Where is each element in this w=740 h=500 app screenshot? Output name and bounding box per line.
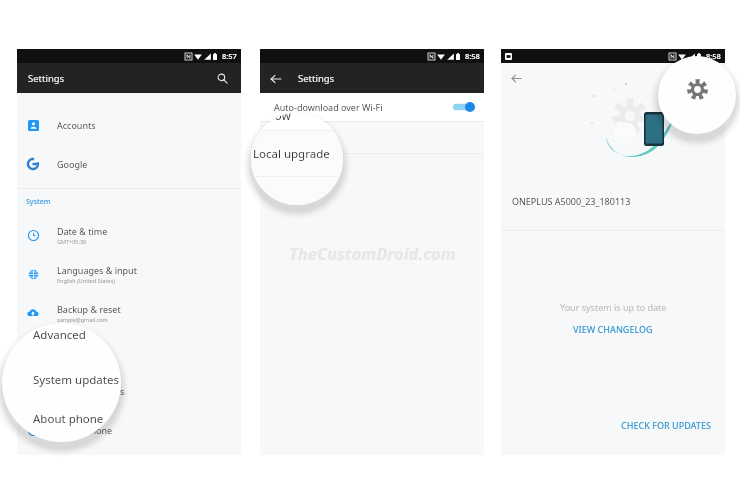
button[interactable]: Date & time	[17, 215, 241, 254]
staticText: System updates	[33, 372, 121, 388]
staticText: Local upgrade	[253, 146, 343, 162]
button[interactable]	[453, 101, 475, 113]
button[interactable]: System updates	[17, 371, 241, 410]
staticText: 8:58	[706, 51, 721, 61]
button[interactable]: Back	[508, 70, 524, 86]
staticText: GMT+05:30	[57, 238, 87, 245]
staticText: o-dow	[256, 113, 326, 123]
staticText: Settings	[28, 72, 65, 85]
staticText: Auto-download over Wi-Fi	[274, 101, 383, 113]
button[interactable]: Advanced	[17, 332, 241, 371]
staticText: About phone	[57, 424, 113, 436]
button[interactable]: About phone	[17, 410, 241, 449]
button[interactable]: CHECK FOR UPDATES	[615, 416, 717, 434]
staticText: System	[26, 197, 51, 207]
staticText: VIEW CHANGELOG	[573, 323, 653, 335]
button[interactable]: Languages & input	[17, 254, 241, 293]
button[interactable]: Accounts	[17, 105, 241, 144]
staticText: English (United States)	[57, 277, 115, 284]
button[interactable]: Backup & reset	[17, 293, 241, 332]
button[interactable]: Google	[17, 144, 241, 183]
staticText: 8:57	[222, 51, 237, 61]
staticText: TheCustomDroid.com	[289, 242, 456, 264]
staticText: Your system is up to date	[560, 301, 667, 313]
button[interactable]: Auto-download over Wi-Fi	[260, 93, 484, 121]
staticText: CHECK FOR UPDATES	[621, 419, 711, 431]
staticText: ONEPLUS A5000_23_180113	[512, 195, 631, 207]
staticText: System updates	[57, 385, 125, 397]
button[interactable]: Back	[267, 70, 284, 87]
button[interactable]: VIEW CHANGELOG	[567, 321, 659, 337]
staticText: Backup & reset	[57, 303, 121, 315]
staticText: Languages & input	[57, 264, 137, 276]
staticText: Google	[57, 158, 88, 170]
staticText: Date & time	[57, 225, 108, 237]
staticText: 8:58	[465, 51, 480, 61]
staticText: Settings	[298, 72, 335, 85]
staticText: Accounts	[57, 119, 96, 131]
staticText: sample@gmail.com	[57, 316, 108, 323]
staticText: About phone	[33, 411, 121, 427]
staticText: Advanced	[33, 327, 121, 343]
button[interactable]: Search	[213, 69, 231, 87]
